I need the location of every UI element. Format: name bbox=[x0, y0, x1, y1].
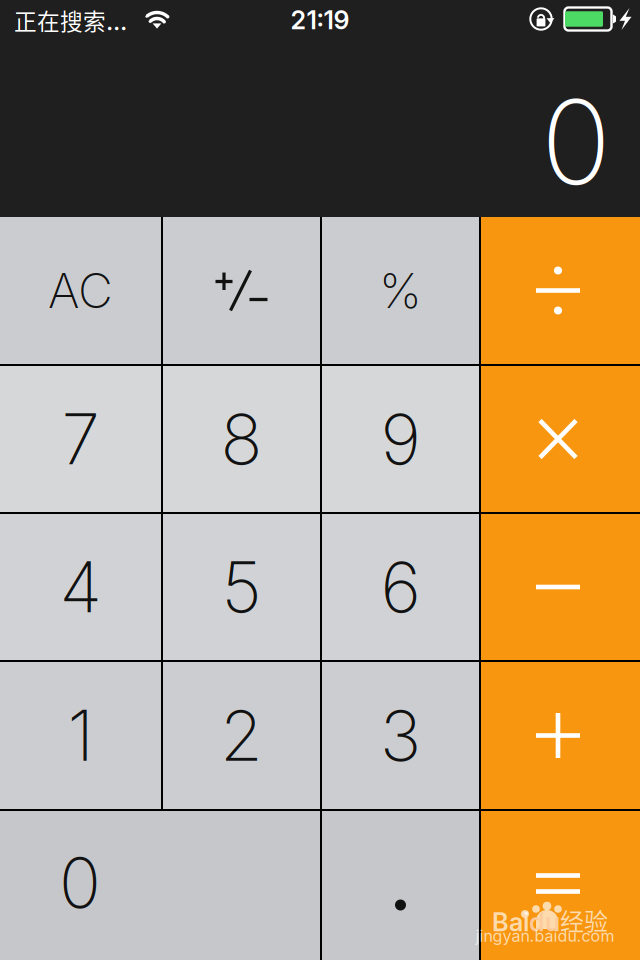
button[interactable]: % bbox=[322, 217, 479, 364]
staticText: ... bbox=[106, 3, 127, 37]
staticText: 正在搜索 bbox=[14, 4, 106, 36]
staticText: 4 bbox=[59, 545, 101, 629]
button[interactable]: 1 bbox=[0, 662, 161, 809]
button[interactable]: Multiply bbox=[481, 366, 640, 512]
button[interactable]: 0 bbox=[0, 811, 320, 960]
staticText: 2 bbox=[220, 694, 263, 777]
staticText: 5 bbox=[221, 545, 261, 629]
button[interactable]: Decimal point bbox=[322, 811, 479, 960]
staticText: 6 bbox=[380, 545, 420, 629]
staticText: 0 bbox=[59, 841, 101, 924]
staticText: 8 bbox=[220, 397, 262, 481]
staticText: du bbox=[529, 907, 560, 937]
button[interactable]: Divide bbox=[481, 217, 640, 364]
staticText: 7 bbox=[61, 397, 99, 481]
staticText: % bbox=[379, 261, 422, 320]
staticText: 1 bbox=[67, 694, 93, 777]
staticText: 3 bbox=[380, 694, 421, 777]
staticText: Bai bbox=[492, 907, 529, 937]
button[interactable]: Add bbox=[481, 662, 640, 809]
button[interactable]: Plus minus bbox=[163, 217, 320, 364]
button[interactable]: 8 bbox=[163, 366, 320, 512]
button[interactable]: 4 bbox=[0, 514, 161, 660]
button[interactable]: 5 bbox=[163, 514, 320, 660]
button[interactable]: AC bbox=[0, 217, 161, 364]
button[interactable]: 9 bbox=[322, 366, 479, 512]
staticText: 经验 bbox=[560, 903, 608, 937]
button[interactable]: 7 bbox=[0, 366, 161, 512]
button[interactable]: Subtract bbox=[481, 514, 640, 660]
button[interactable]: Equals bbox=[481, 811, 640, 960]
button[interactable]: 6 bbox=[322, 514, 479, 660]
staticText: 0 bbox=[541, 72, 611, 212]
staticText: 21:19 bbox=[290, 5, 349, 35]
button[interactable]: 3 bbox=[322, 662, 479, 809]
staticText: jingyan.baidu.com bbox=[475, 926, 614, 946]
staticText: 9 bbox=[380, 397, 420, 481]
button[interactable]: 2 bbox=[163, 662, 320, 809]
staticText: AC bbox=[48, 261, 113, 320]
